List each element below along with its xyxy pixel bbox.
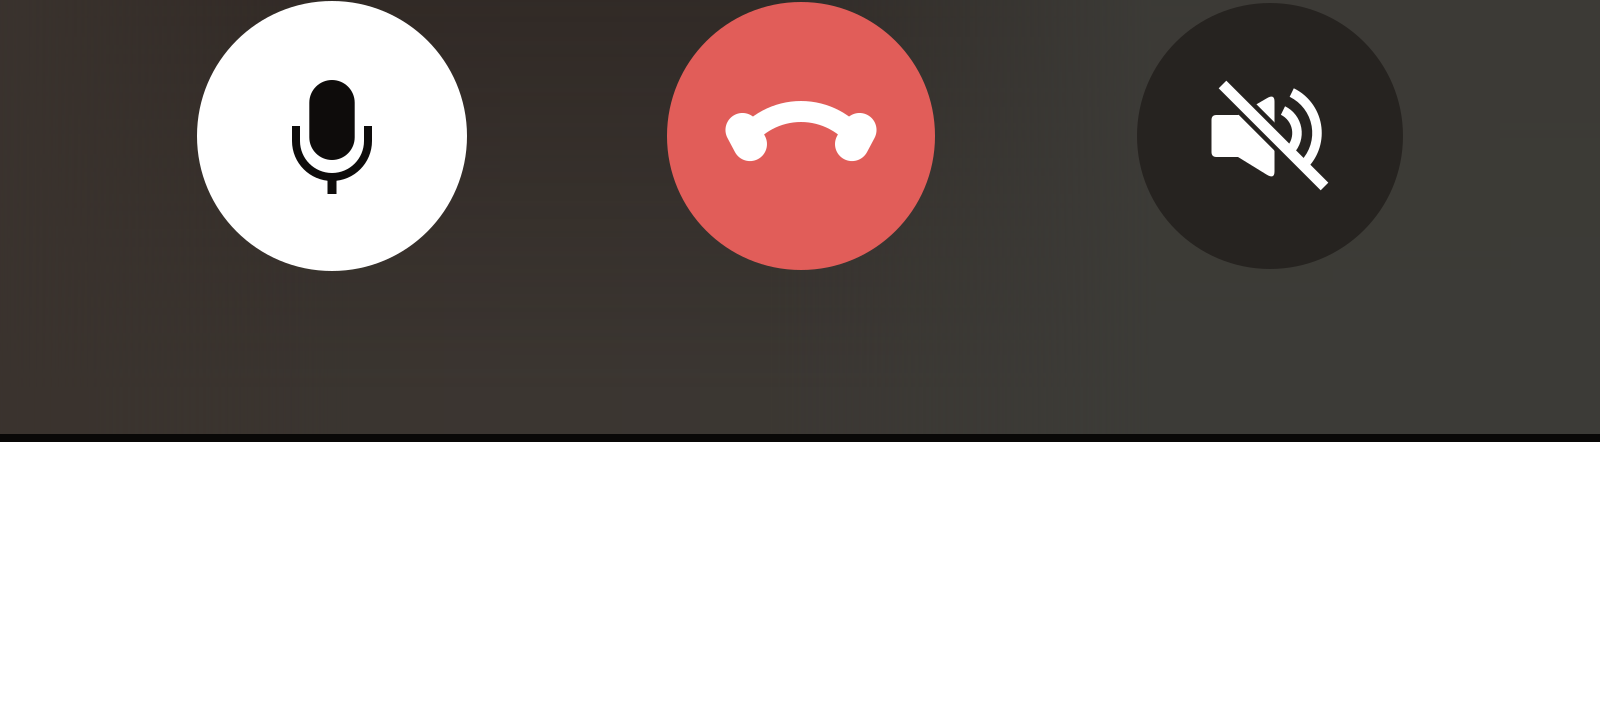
button[interactable]: Mute xyxy=(197,1,467,271)
button[interactable]: Speaker xyxy=(1137,3,1403,269)
button[interactable]: End Call xyxy=(667,2,935,270)
